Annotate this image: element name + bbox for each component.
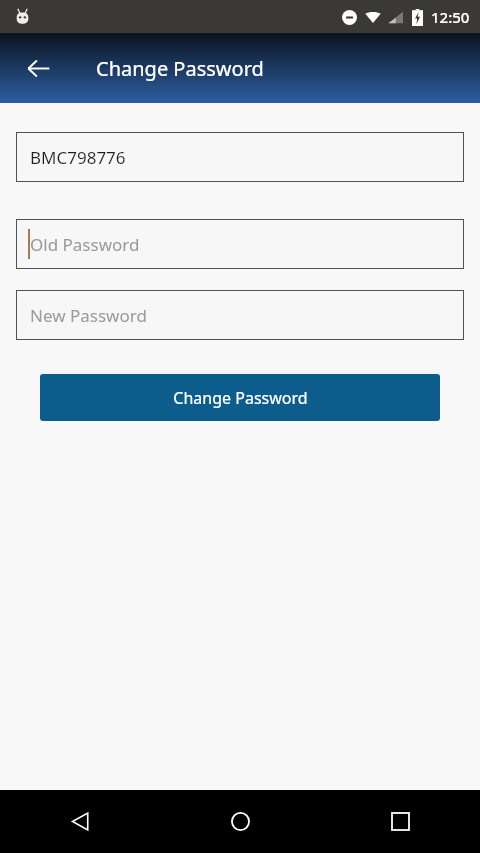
button[interactable]: Back [0,790,160,853]
button[interactable]: Old Password [16,219,464,269]
staticText: BMC798776 [30,146,126,169]
button[interactable]: Home [160,790,320,853]
button[interactable]: Back [14,44,62,92]
button[interactable]: BMC798776 [16,132,464,182]
staticText: Change Password [96,55,264,82]
button[interactable]: Recent apps [320,790,480,853]
staticText: Old Password [30,233,140,256]
button[interactable]: New Password [16,290,464,340]
button[interactable]: Change Password [40,374,440,421]
staticText: Change Password [173,387,308,409]
staticText: 12:50 [431,7,470,27]
staticText: New Password [30,304,147,327]
